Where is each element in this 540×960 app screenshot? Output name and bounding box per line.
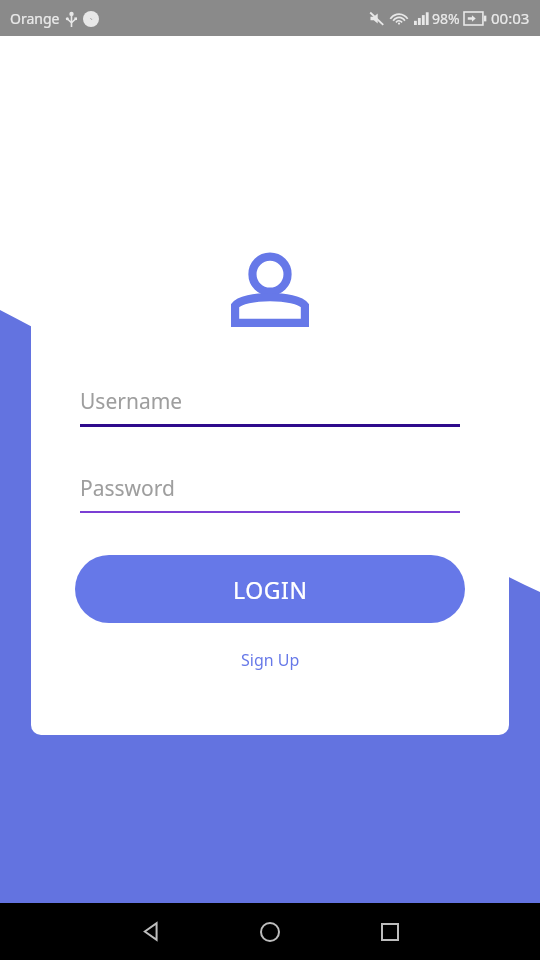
- staticText: Password: [80, 474, 175, 503]
- button[interactable]: Username: [80, 387, 460, 427]
- staticText: Username: [80, 387, 183, 416]
- button[interactable]: LOGIN: [75, 555, 465, 623]
- other: Account avatar: [231, 257, 309, 327]
- staticText: 98%: [432, 9, 460, 28]
- staticText: LOGIN: [233, 574, 308, 605]
- button[interactable]: Home: [240, 903, 300, 960]
- button[interactable]: Sign Up: [223, 641, 318, 679]
- staticText: Sign Up: [241, 649, 300, 671]
- button[interactable]: Back: [120, 903, 180, 960]
- staticText: Orange: [10, 9, 60, 28]
- staticText: 00:03: [491, 8, 530, 28]
- button[interactable]: Password: [80, 474, 460, 513]
- button[interactable]: Recent apps: [360, 903, 420, 960]
